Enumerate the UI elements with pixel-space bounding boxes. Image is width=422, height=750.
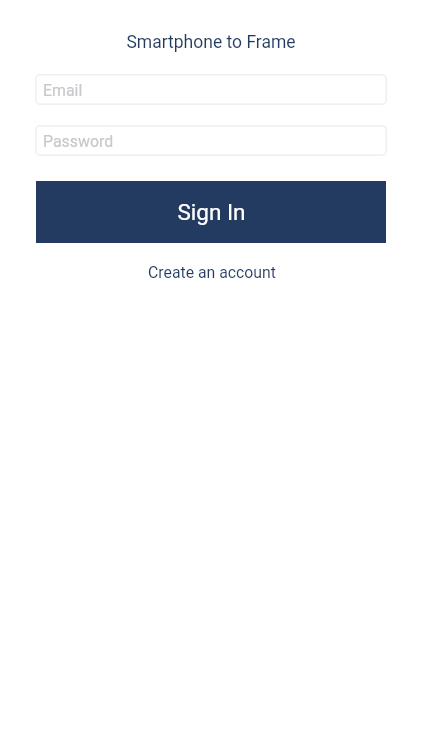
- staticText: Smartphone to Frame: [126, 32, 296, 53]
- button[interactable]: Email: [35, 74, 387, 105]
- staticText: Email: [43, 81, 83, 100]
- button[interactable]: Sign In: [36, 181, 386, 243]
- staticText: Sign In: [177, 199, 246, 225]
- button[interactable]: Password: [35, 125, 387, 156]
- staticText: Password: [43, 132, 114, 151]
- staticText: Create an account: [148, 263, 276, 282]
- button[interactable]: Create an account: [136, 255, 288, 290]
